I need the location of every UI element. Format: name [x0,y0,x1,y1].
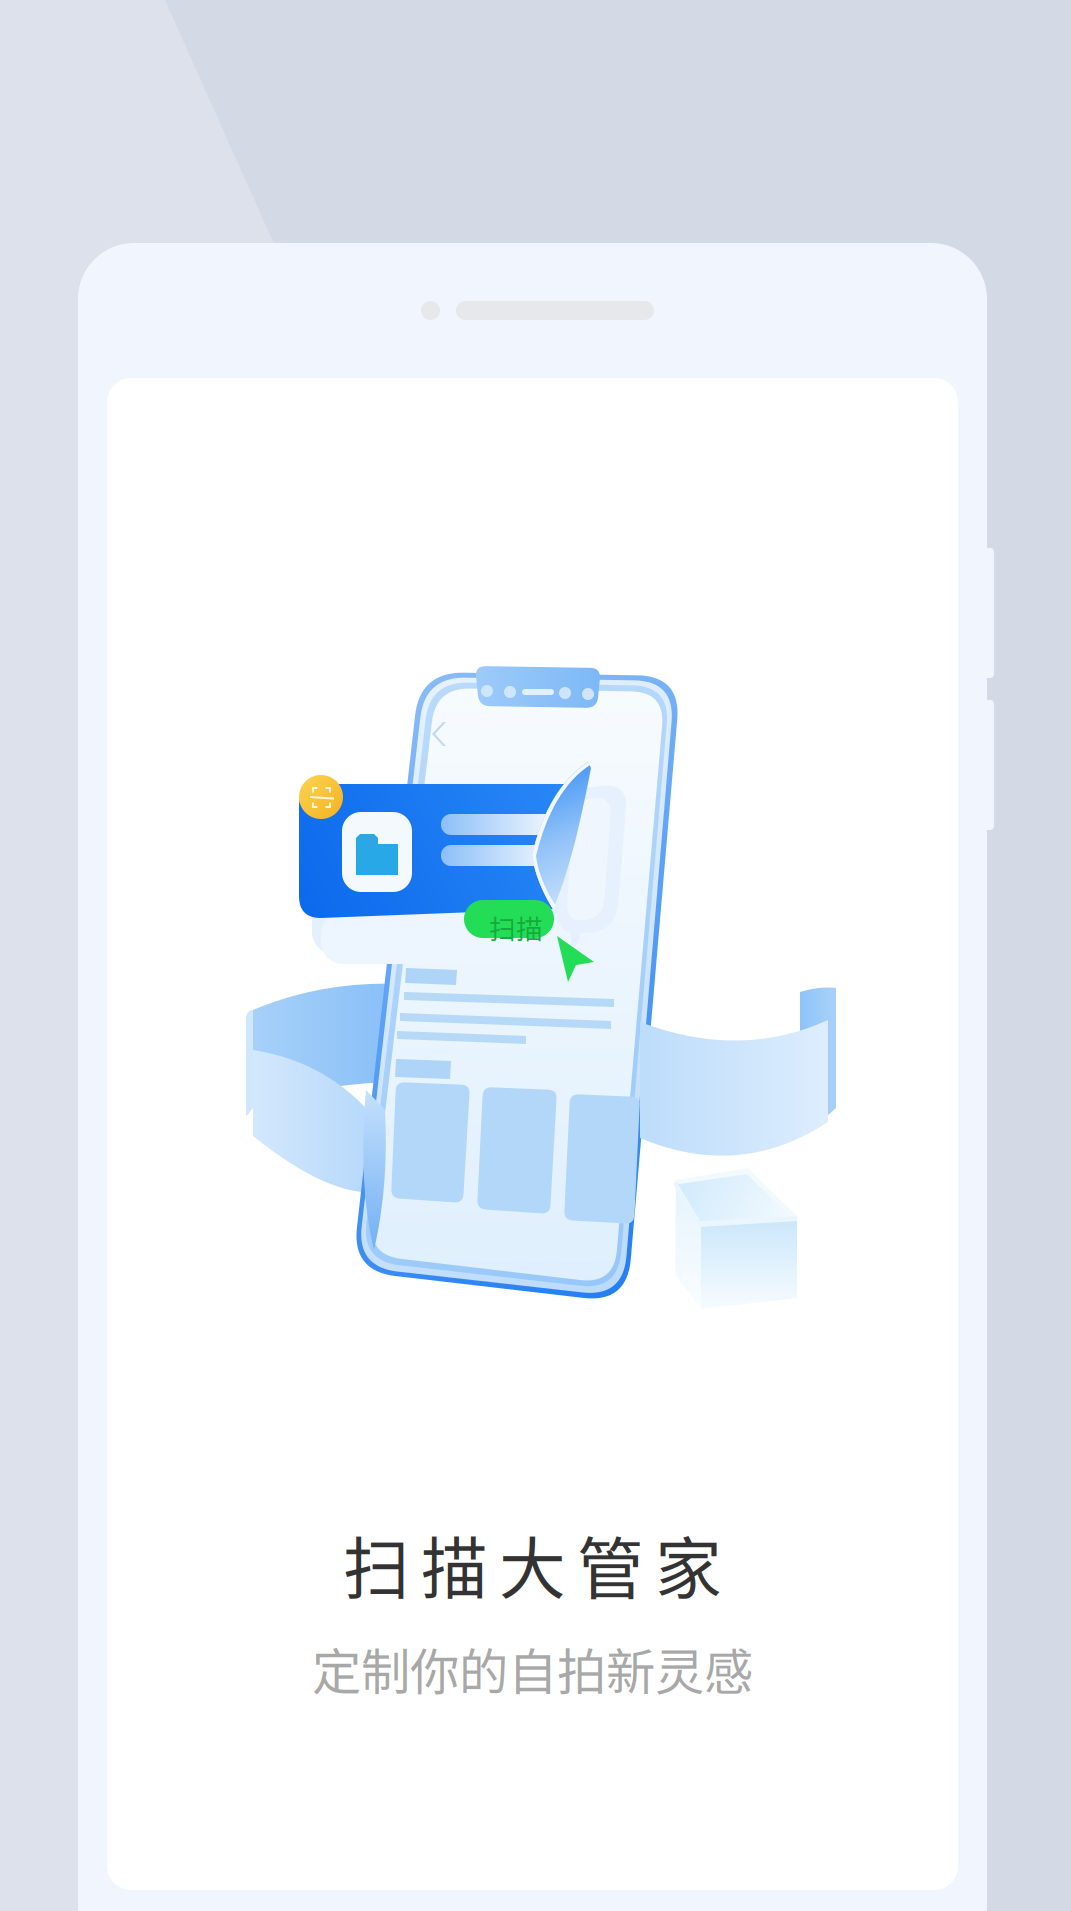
staticText: 定制你的自拍新灵感 [312,1632,753,1704]
staticText: 扫描大管家 [343,1516,722,1612]
staticText: 扫描 [489,908,543,947]
